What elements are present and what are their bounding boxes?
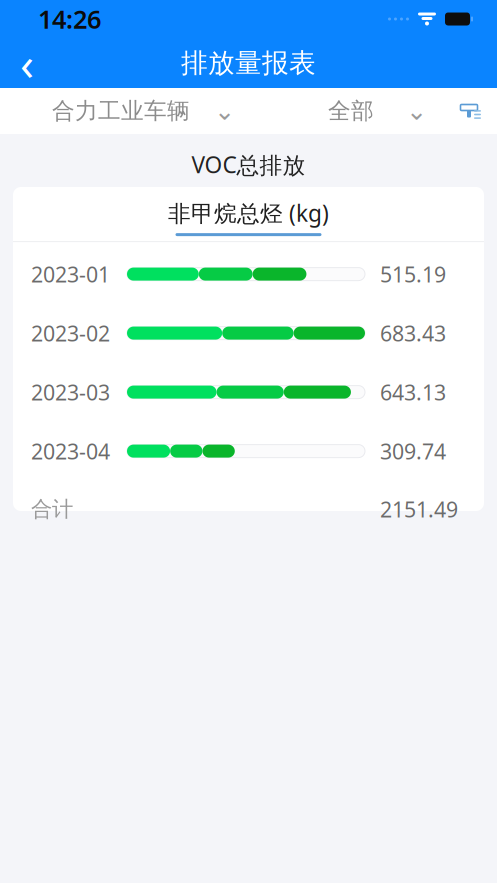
staticText: ⌄ <box>406 97 427 125</box>
staticText: 683.43 <box>380 319 446 347</box>
staticText: 309.74 <box>380 437 446 465</box>
button[interactable]: 全部 <box>328 88 427 134</box>
staticText: 2023-03 <box>31 378 110 406</box>
staticText: ‹ <box>20 33 34 93</box>
staticText: 合力工业车辆 <box>52 97 190 125</box>
button[interactable]: 筛选 <box>451 88 487 134</box>
staticText: 2151.49 <box>380 495 458 523</box>
staticText: 643.13 <box>380 378 446 406</box>
staticText: 合计 <box>31 496 73 522</box>
button[interactable]: 返回 <box>0 38 54 88</box>
staticText: 排放量报表 <box>181 47 316 79</box>
staticText: 14:26 <box>38 2 101 36</box>
button[interactable]: 合力工业车辆 <box>0 88 235 134</box>
staticText: 2023-04 <box>31 437 110 465</box>
staticText: 2023-01 <box>31 260 110 288</box>
staticText: 非甲烷总烃 (kg) <box>168 198 329 228</box>
staticText: 515.19 <box>380 260 446 288</box>
staticText: 2023-02 <box>31 319 110 347</box>
staticText: ⌄ <box>214 97 235 125</box>
staticText: 全部 <box>328 97 374 125</box>
staticText: VOC总排放 <box>191 149 305 180</box>
